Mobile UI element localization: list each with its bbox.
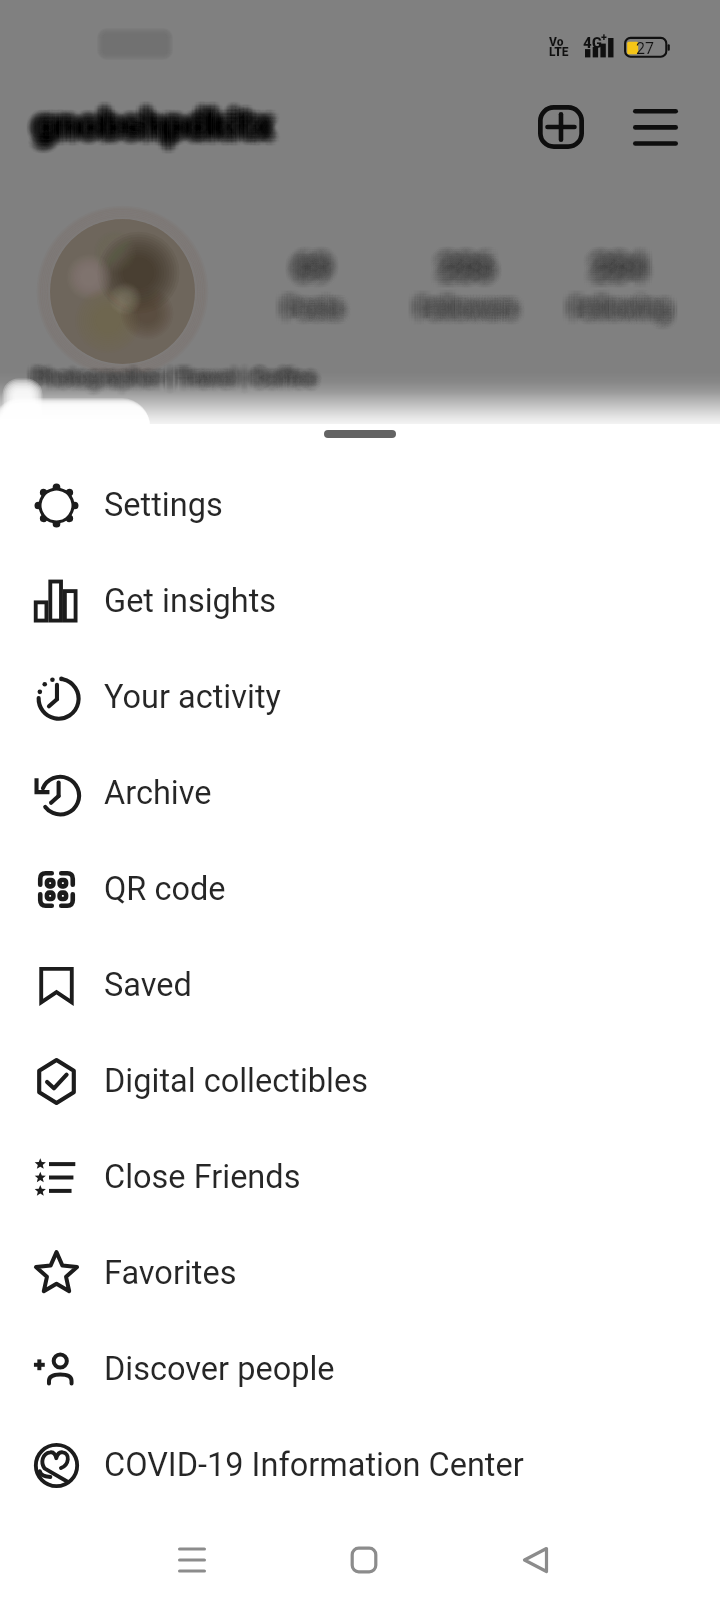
staticText: 69 bbox=[285, 244, 321, 280]
staticText: 69 bbox=[301, 256, 337, 292]
staticText: gnobshpdkitx bbox=[30, 95, 270, 141]
staticText: 286 bbox=[444, 240, 498, 276]
staticText: Photographer | Travel | Coffee bbox=[39, 364, 323, 389]
staticText: Photographer | Travel | Coffee bbox=[39, 363, 323, 388]
staticText: 286 bbox=[442, 251, 496, 287]
button[interactable]: Settings bbox=[0, 457, 720, 553]
staticText: Posts bbox=[277, 297, 337, 324]
staticText: gnobshpdkitx bbox=[28, 99, 268, 145]
staticText: Get insights bbox=[104, 582, 277, 620]
staticText: Followers bbox=[411, 287, 512, 314]
staticText: Followers bbox=[408, 292, 509, 319]
staticText: Posts bbox=[283, 300, 343, 327]
staticText: gnobshpdkitx bbox=[40, 99, 280, 145]
staticText: Following bbox=[573, 290, 674, 317]
staticText: Followers bbox=[419, 304, 520, 331]
staticText: Photographer | Travel | Coffee bbox=[26, 367, 310, 392]
staticText: 286 bbox=[436, 242, 490, 278]
staticText: Posts bbox=[283, 286, 343, 313]
staticText: 286 bbox=[442, 246, 496, 282]
staticText: Posts bbox=[278, 303, 338, 330]
staticText: 284 bbox=[597, 246, 651, 282]
staticText: Photographer | Travel | Coffee bbox=[34, 373, 318, 398]
staticText: Posts bbox=[285, 298, 345, 325]
staticText: 284 bbox=[589, 244, 643, 280]
staticText: Photographer | Travel | Coffee bbox=[37, 363, 321, 388]
staticText: 286 bbox=[436, 252, 490, 288]
button[interactable]: Back bbox=[504, 1528, 568, 1592]
staticText: 284 bbox=[582, 246, 636, 282]
button[interactable]: QR code bbox=[0, 841, 720, 937]
staticText: 69 bbox=[289, 252, 325, 288]
staticText: Followers bbox=[416, 293, 517, 320]
staticText: Photographer | Travel | Coffee bbox=[32, 358, 316, 383]
staticText: Photographer | Travel | Coffee bbox=[38, 368, 322, 393]
staticText: Following bbox=[572, 295, 673, 322]
staticText: 286 bbox=[436, 258, 490, 294]
staticText: Photographer | Travel | Coffee bbox=[35, 372, 319, 397]
staticText: 69 bbox=[304, 246, 340, 282]
button[interactable]: Digital collectibles bbox=[0, 1033, 720, 1129]
staticText: 286 bbox=[436, 247, 490, 283]
button[interactable]: Your activity bbox=[0, 649, 720, 745]
staticText: 69 bbox=[292, 239, 328, 275]
staticText: Following bbox=[561, 295, 662, 322]
button[interactable]: Menu bbox=[633, 109, 678, 146]
staticText: 284 bbox=[594, 240, 648, 276]
staticText: Photographer | Travel | Coffee bbox=[30, 372, 314, 397]
staticText: Followers bbox=[411, 297, 512, 324]
staticText: 69 bbox=[291, 252, 327, 288]
staticText: Photographer | Travel | Coffee bbox=[34, 369, 318, 394]
staticText: Followers bbox=[424, 293, 525, 320]
staticText: Photographer | Travel | Coffee bbox=[33, 364, 317, 389]
staticText: Posts bbox=[277, 301, 337, 328]
staticText: 284 bbox=[601, 249, 655, 285]
staticText: 284 bbox=[580, 249, 634, 285]
staticText: 284 bbox=[587, 247, 641, 283]
staticText: gnobshpdkitx bbox=[34, 101, 274, 147]
button[interactable]: Archive bbox=[0, 745, 720, 841]
button[interactable]: Close Friends bbox=[0, 1129, 720, 1225]
button[interactable]: Favorites bbox=[0, 1225, 720, 1321]
staticText: Photographer | Travel | Coffee bbox=[35, 373, 319, 398]
staticText: Followers bbox=[421, 287, 522, 314]
button[interactable]: Recents bbox=[160, 1528, 224, 1592]
staticText: 284 bbox=[590, 242, 644, 278]
button[interactable]: Home bbox=[332, 1528, 396, 1592]
staticText: Photographer | Travel | Coffee bbox=[34, 360, 318, 385]
staticText: gnobshpdkitx bbox=[41, 102, 281, 148]
button[interactable]: Create bbox=[538, 105, 584, 149]
staticText: Photographer | Travel | Coffee bbox=[29, 366, 313, 391]
staticText: Photographer | Travel | Coffee bbox=[27, 367, 311, 392]
staticText: Photographer | Travel | Coffee bbox=[34, 359, 318, 384]
staticText: 284 bbox=[599, 256, 653, 292]
staticText: gnobshpdkitx bbox=[36, 110, 276, 156]
staticText: Photographer | Travel | Coffee bbox=[32, 371, 316, 396]
staticText: gnobshpdkitx bbox=[28, 107, 268, 153]
staticText: gnobshpdkitx bbox=[34, 103, 274, 149]
button[interactable]: Discover people bbox=[0, 1321, 720, 1417]
button[interactable]: COVID-19 Information Center bbox=[0, 1417, 720, 1513]
staticText: Following bbox=[565, 297, 666, 324]
staticText: Photographer | Travel | Coffee bbox=[35, 359, 319, 384]
staticText: Photographer | Travel | Coffee bbox=[33, 361, 317, 386]
staticText: gnobshpdkitx bbox=[29, 97, 269, 143]
staticText: 69 bbox=[296, 247, 332, 283]
staticText: Posts bbox=[274, 290, 334, 317]
staticText: Followers bbox=[416, 300, 517, 327]
staticText: Followers bbox=[407, 298, 508, 325]
staticText: Followers bbox=[410, 297, 511, 324]
staticText: 69 bbox=[301, 244, 337, 280]
button[interactable]: Get insights bbox=[0, 553, 720, 649]
button[interactable]: Saved bbox=[0, 937, 720, 1033]
staticText: 286 bbox=[439, 251, 493, 287]
staticText: Followers bbox=[411, 292, 512, 319]
staticText: 286 bbox=[439, 246, 493, 282]
staticText: 69 bbox=[294, 249, 330, 285]
staticText: 284 bbox=[599, 246, 653, 282]
staticText: Followers bbox=[411, 298, 512, 325]
staticText: Posts bbox=[281, 292, 341, 319]
staticText: Followers bbox=[414, 301, 515, 328]
staticText: Posts bbox=[272, 295, 332, 322]
staticText: Photographer | Travel | Coffee bbox=[35, 365, 319, 390]
